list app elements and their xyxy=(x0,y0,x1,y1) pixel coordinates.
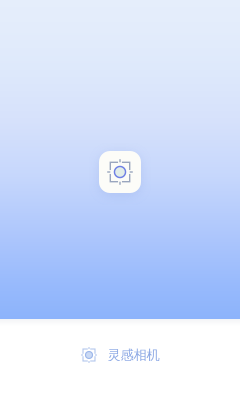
staticText: 灵感相机 xyxy=(107,347,159,363)
button[interactable]: 灵感相机 xyxy=(99,151,141,193)
button[interactable]: 灵感相机 xyxy=(80,344,159,366)
